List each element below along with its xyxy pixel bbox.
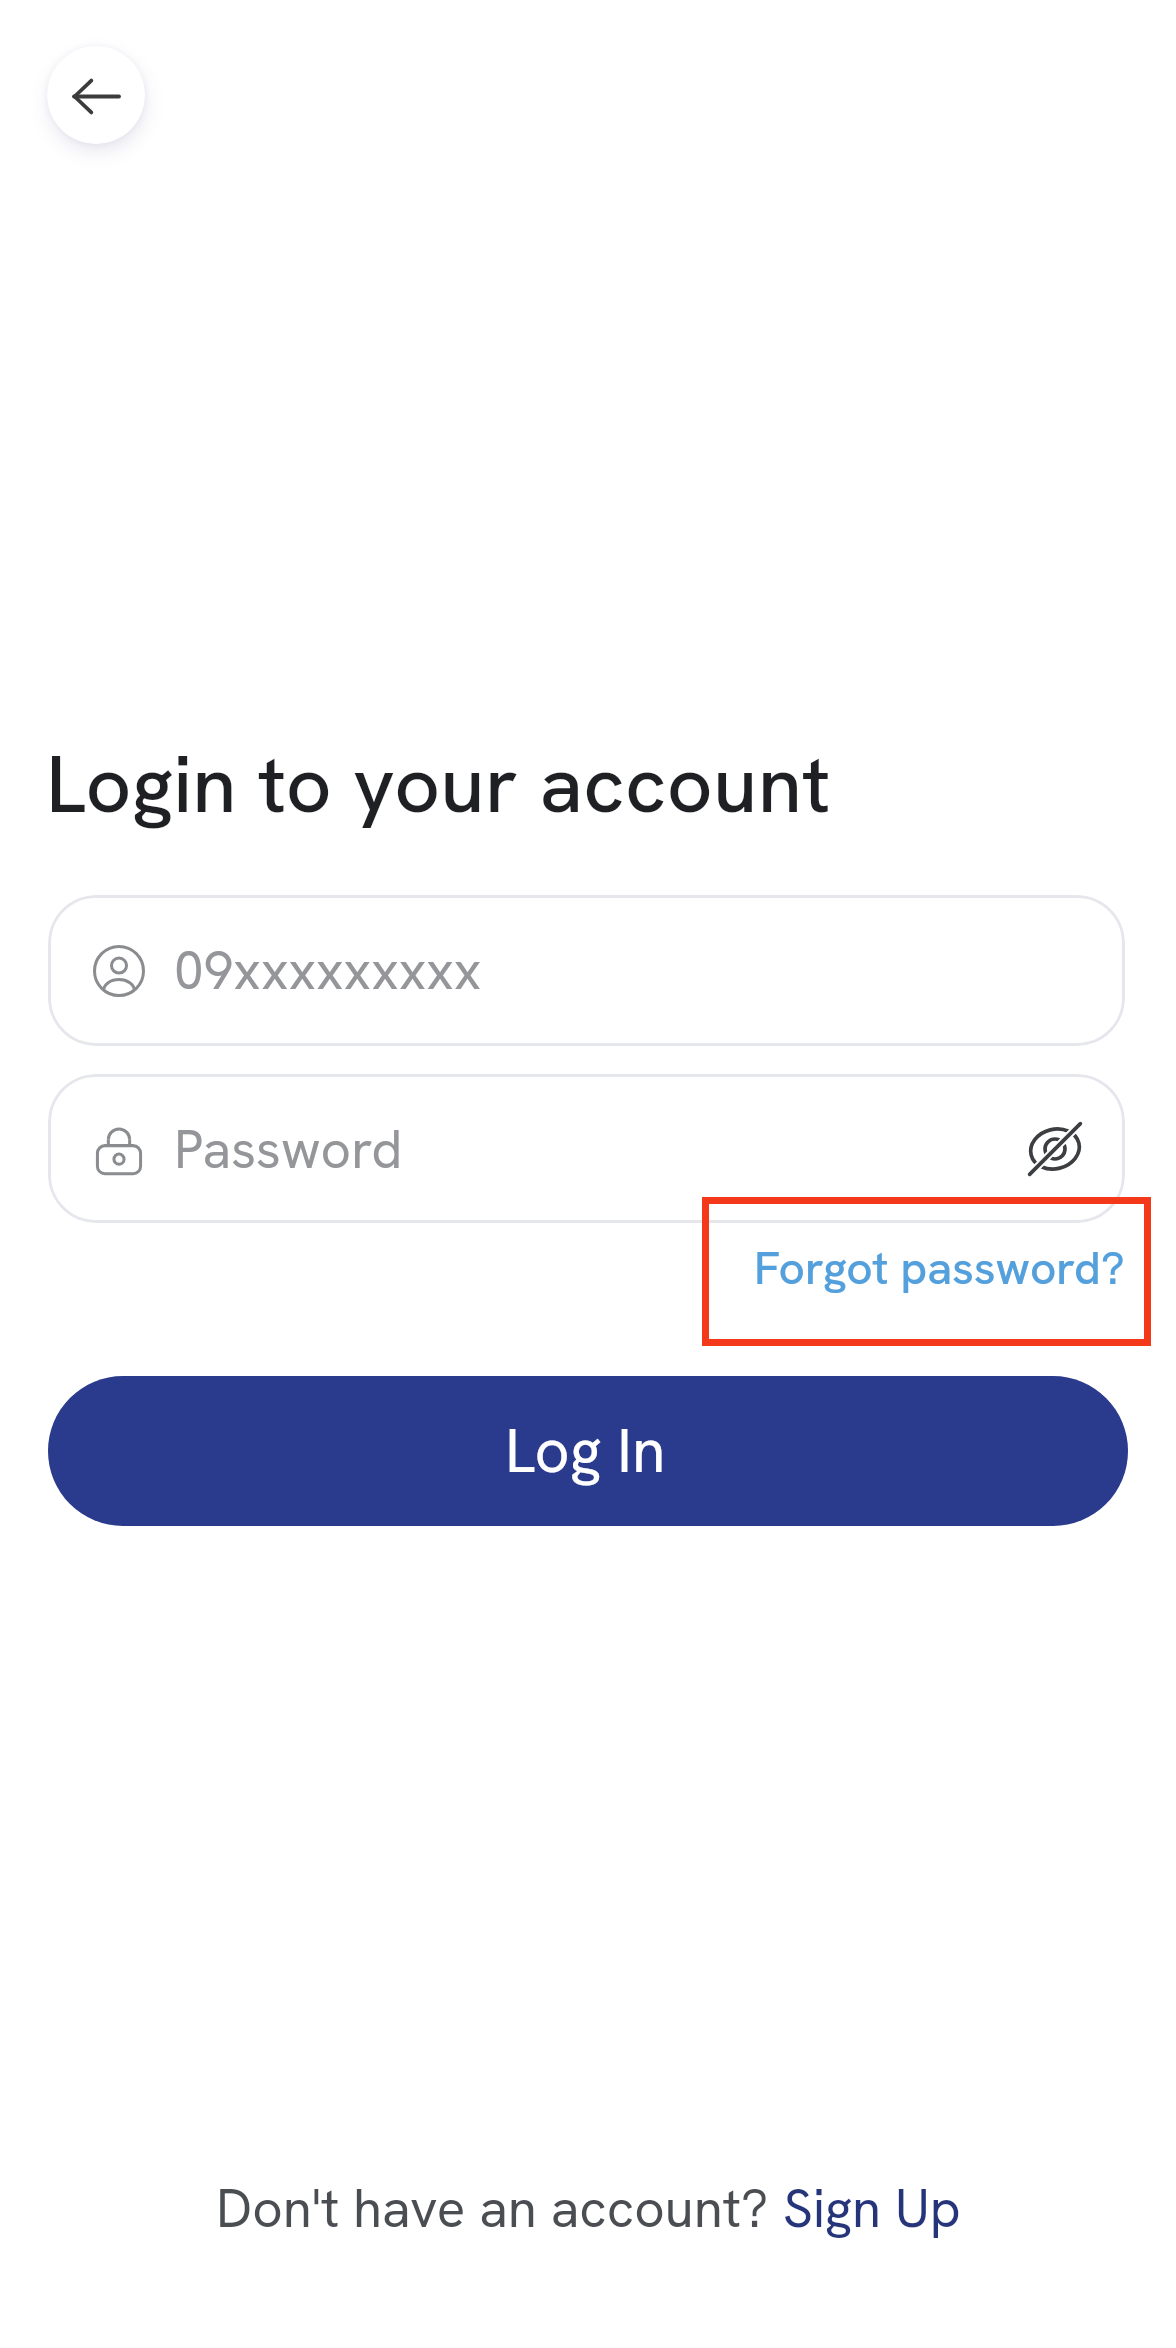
button[interactable]: Log In <box>48 1376 1128 1526</box>
staticText: Password <box>174 1115 403 1184</box>
button[interactable]: Back <box>47 46 145 144</box>
staticText: Forgot password? <box>754 1238 1125 1298</box>
button[interactable]: Sign Up <box>783 2174 961 2243</box>
staticText: Log In <box>505 1411 666 1490</box>
staticText: Login to your account <box>46 732 831 836</box>
button[interactable]: Show password <box>1010 1104 1100 1194</box>
staticText: Don't have an account? <box>216 2174 783 2243</box>
staticText: 09xxxxxxxxx <box>174 936 482 1005</box>
button[interactable]: Forgot password? <box>702 1197 1151 1346</box>
button[interactable]: 09xxxxxxxxx <box>48 895 1125 1046</box>
